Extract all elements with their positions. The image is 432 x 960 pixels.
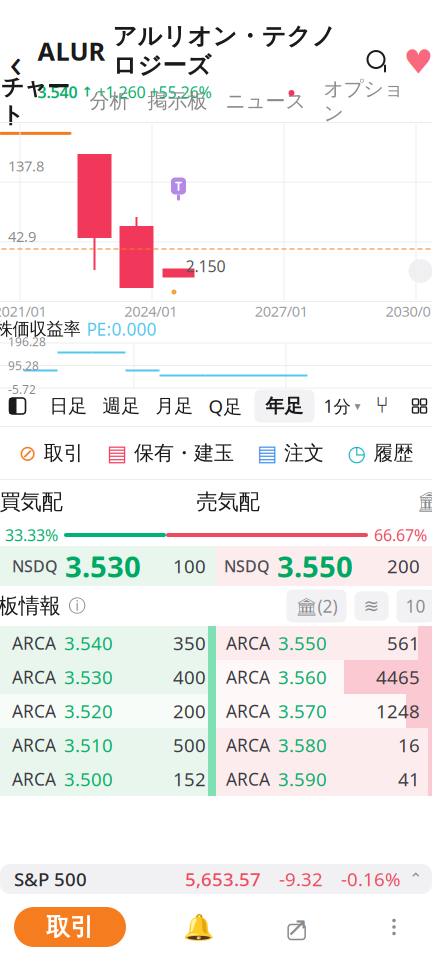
- button[interactable]: 検索: [358, 40, 398, 84]
- staticText: -9.32: [279, 867, 323, 891]
- staticText: 月足: [155, 394, 193, 417]
- staticText: NSDQ: [224, 555, 270, 577]
- staticText: 100: [173, 554, 206, 578]
- staticText: 200: [387, 554, 420, 578]
- staticText: 1248: [376, 699, 420, 723]
- staticText: ⊘: [19, 441, 37, 465]
- staticText: ARCA: [226, 699, 270, 722]
- staticText: 3.530: [64, 665, 113, 689]
- button[interactable]: ◷: [347, 433, 413, 473]
- staticText: 2027/01: [255, 301, 308, 321]
- staticText: +1.260: [96, 81, 145, 103]
- button[interactable]: 年足: [254, 389, 314, 422]
- staticText: 500: [173, 733, 206, 757]
- staticText: 1分: [323, 394, 350, 417]
- button[interactable]: お気に入り: [398, 40, 432, 84]
- button[interactable]: 分析: [89, 89, 129, 119]
- staticText: ≋: [363, 595, 379, 617]
- staticText: 95.28: [8, 357, 39, 373]
- button[interactable]: ARCA: [216, 728, 432, 762]
- staticText: 3.550: [278, 631, 327, 655]
- staticText: 3.540: [37, 81, 77, 103]
- staticText: ⌃: [409, 870, 422, 888]
- staticText: 3.510: [64, 733, 113, 757]
- button[interactable]: ニュース: [225, 89, 305, 119]
- button[interactable]: 掲示板: [147, 89, 207, 119]
- button[interactable]: 週足: [99, 389, 143, 422]
- button[interactable]: 日足: [46, 389, 90, 422]
- button[interactable]: ARCA: [0, 626, 216, 660]
- button[interactable]: 表示切替: [0, 389, 37, 423]
- button[interactable]: ▤: [107, 433, 234, 473]
- staticText: 注文: [284, 441, 324, 465]
- button[interactable]: ARCA: [216, 694, 432, 728]
- staticText: 3.560: [278, 665, 327, 689]
- staticText: チャート: [1, 73, 70, 129]
- staticText: 3.570: [278, 699, 327, 723]
- button[interactable]: S&P 500: [0, 864, 432, 894]
- staticText: ARCA: [226, 665, 270, 688]
- button[interactable]: ローソク足: [369, 391, 395, 421]
- button[interactable]: Back: [0, 40, 37, 84]
- button[interactable]: 10: [396, 589, 432, 622]
- staticText: 3.590: [278, 767, 327, 791]
- button[interactable]: ▤: [257, 433, 324, 473]
- staticText: ALUR: [37, 34, 105, 68]
- staticText: ↗: [286, 912, 308, 942]
- staticText: NSDQ: [12, 555, 58, 577]
- staticText: ARCA: [226, 631, 270, 654]
- staticText: 2030/01: [385, 301, 432, 321]
- staticText: アルリオン・テクノロジーズ: [112, 21, 336, 80]
- button[interactable]: その他: [370, 905, 418, 949]
- staticText: ARCA: [12, 631, 56, 654]
- button[interactable]: 月足: [152, 389, 196, 422]
- staticText: -5.72: [8, 381, 36, 397]
- staticText: 3.580: [278, 733, 327, 757]
- button[interactable]: Q足: [205, 389, 245, 423]
- button[interactable]: チャート: [0, 73, 71, 135]
- button[interactable]: 全画面: [404, 390, 432, 422]
- button[interactable]: ARCA: [0, 762, 216, 796]
- staticText: Q足: [208, 394, 242, 418]
- staticText: 561: [387, 631, 420, 655]
- staticText: 3.500: [64, 767, 113, 791]
- staticText: 4465: [376, 665, 420, 689]
- button[interactable]: オプション: [323, 76, 403, 131]
- staticText: ♥: [403, 43, 432, 81]
- staticText: 3.540: [64, 631, 113, 655]
- staticText: ARCA: [12, 767, 56, 790]
- staticText: 196.28: [8, 334, 46, 349]
- button[interactable]: ARCA: [216, 626, 432, 660]
- staticText: ⑂: [375, 395, 389, 417]
- staticText: ‹: [9, 35, 21, 88]
- button[interactable]: ARCA: [216, 660, 432, 694]
- button[interactable]: ⊘: [19, 433, 84, 473]
- staticText: +55.26%: [149, 81, 211, 103]
- staticText: ARCA: [226, 733, 270, 756]
- button[interactable]: 共有: [273, 905, 321, 949]
- staticText: 2021/01: [0, 301, 46, 321]
- button[interactable]: 1分: [323, 394, 360, 417]
- button[interactable]: ARCA: [0, 728, 216, 762]
- staticText: 200: [173, 699, 206, 723]
- staticText: オプション: [323, 76, 403, 125]
- staticText: 41: [398, 767, 420, 791]
- staticText: 3.520: [64, 699, 113, 723]
- staticText: 16: [398, 733, 420, 757]
- staticText: 3.550: [277, 546, 353, 585]
- staticText: ▤: [257, 441, 277, 465]
- staticText: 売気配: [196, 489, 259, 515]
- button[interactable]: ARCA: [0, 660, 216, 694]
- button[interactable]: 取引所: [412, 485, 432, 519]
- button[interactable]: ARCA: [216, 762, 432, 796]
- button[interactable]: ARCA: [0, 694, 216, 728]
- staticText: 🏛(2): [295, 594, 337, 617]
- staticText: ARCA: [12, 733, 56, 756]
- button[interactable]: 取引: [14, 907, 126, 947]
- staticText: ▾: [354, 399, 360, 413]
- button[interactable]: アラート: [175, 905, 223, 949]
- staticText: ARCA: [12, 665, 56, 688]
- button[interactable]: フィルタ: [354, 591, 388, 621]
- staticText: 年足: [265, 394, 303, 417]
- button[interactable]: 🏛(2): [286, 589, 346, 622]
